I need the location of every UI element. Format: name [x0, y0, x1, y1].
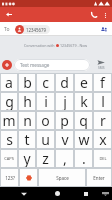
staticText: Text message [20, 62, 50, 68]
button[interactable]: d [55, 73, 74, 92]
staticText: SMS [98, 66, 105, 70]
staticText: Enter [93, 175, 105, 181]
staticText: z [42, 149, 49, 168]
button[interactable]: q [74, 111, 93, 130]
staticText: i [44, 92, 48, 111]
staticText: f [100, 73, 105, 92]
button[interactable]: Add contact [98, 23, 111, 36]
button[interactable]: u [36, 130, 55, 149]
button[interactable]: Space [38, 168, 86, 187]
staticText: p [60, 111, 69, 130]
button[interactable]: n [18, 111, 36, 130]
button[interactable]: . [74, 149, 93, 168]
button[interactable]: b [18, 73, 36, 92]
staticText: d [60, 73, 69, 92]
staticText: h [23, 92, 32, 111]
button[interactable]: 123? [0, 168, 19, 187]
staticText: 12345679 - Now [60, 43, 88, 48]
button[interactable]: Home [50, 187, 64, 200]
button[interactable]: e [74, 73, 93, 92]
button[interactable]: f [93, 73, 112, 92]
button[interactable]: i [36, 92, 55, 111]
staticText: Conversation with [24, 43, 55, 48]
button[interactable]: Enter [86, 168, 112, 187]
button[interactable]: o [36, 111, 55, 130]
staticText: CAPS [4, 156, 14, 161]
staticText: , [63, 149, 67, 168]
button[interactable]: Back [2, 8, 15, 21]
button[interactable]: Emoji [19, 168, 38, 187]
button[interactable]: g [0, 92, 18, 111]
staticText: Space [56, 175, 69, 181]
staticText: e [80, 73, 88, 92]
staticText: s [6, 130, 13, 149]
button[interactable]: Send SMS [90, 57, 112, 73]
button[interactable]: m [0, 111, 18, 130]
button[interactable]: More options [99, 9, 111, 21]
staticText: To [4, 26, 10, 33]
button[interactable]: 12345679 [15, 25, 50, 34]
button[interactable]: z [36, 149, 55, 168]
button[interactable]: DEL [93, 149, 112, 168]
button[interactable]: w [74, 130, 93, 149]
staticText: u [41, 130, 50, 149]
staticText: 12345679 [26, 27, 47, 33]
staticText: . [82, 149, 86, 168]
button[interactable]: s [0, 130, 18, 149]
button[interactable]: , [55, 149, 74, 168]
button[interactable]: Add attachment [2, 60, 12, 70]
staticText: w [78, 130, 90, 149]
button[interactable]: a [0, 73, 18, 92]
staticText: y [23, 149, 31, 168]
staticText: o [41, 111, 50, 130]
staticText: v [61, 130, 69, 149]
staticText: t [24, 130, 30, 149]
staticText: DEL [99, 156, 107, 161]
button[interactable]: p [55, 111, 74, 130]
button[interactable]: Recent apps [79, 187, 93, 200]
staticText: g [5, 92, 14, 111]
staticText: r [100, 111, 106, 130]
button[interactable]: Back [17, 187, 31, 200]
button[interactable]: v [55, 130, 74, 149]
button[interactable]: c [36, 73, 55, 92]
button[interactable]: h [18, 92, 36, 111]
button[interactable]: Call [87, 8, 100, 21]
staticText: x [99, 130, 107, 149]
staticText: q [79, 111, 88, 130]
button[interactable]: Text message [14, 59, 90, 71]
button[interactable]: y [18, 149, 36, 168]
button[interactable]: r [93, 111, 112, 130]
button[interactable]: Hide keyboard [99, 188, 111, 200]
button[interactable]: j [55, 92, 74, 111]
staticText: n [23, 111, 32, 130]
button[interactable]: CAPS [0, 149, 18, 168]
button[interactable]: x [93, 130, 112, 149]
button[interactable]: t [18, 130, 36, 149]
staticText: l [101, 92, 105, 111]
staticText: b [23, 73, 32, 92]
staticText: k [80, 92, 88, 111]
staticText: 123? [5, 175, 15, 181]
button[interactable]: l [93, 92, 112, 111]
staticText: m [2, 111, 16, 130]
staticText: c [42, 73, 49, 92]
button[interactable]: k [74, 92, 93, 111]
staticText: j [63, 92, 67, 111]
staticText: a [5, 73, 13, 92]
